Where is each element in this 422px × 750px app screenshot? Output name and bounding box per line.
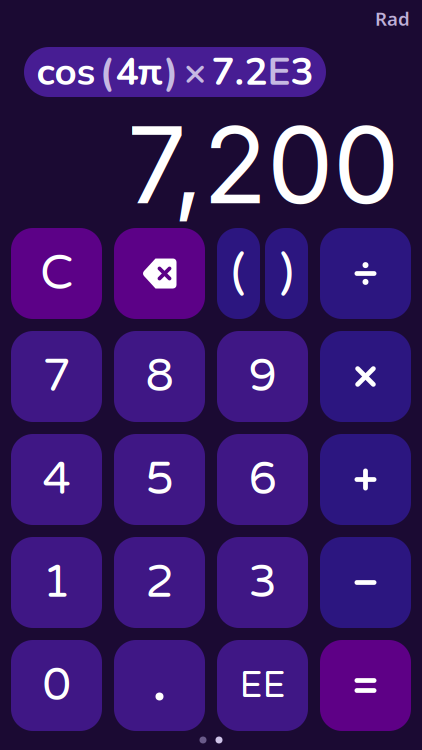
staticText: 3 [248,555,276,610]
staticText: 7,200 [127,101,399,229]
button[interactable]: Divide [320,228,411,319]
staticText: ( [99,46,113,98]
staticText: Rad [375,6,410,31]
staticText: 9 [248,349,276,404]
button[interactable]: C [11,228,102,319]
button[interactable]: 6 [217,434,308,525]
staticText: × [183,46,206,98]
staticText: C [40,245,73,302]
button[interactable]: EE [217,640,308,731]
staticText: 2 [145,555,173,610]
button[interactable]: 0 [11,640,102,731]
staticText: 4 [42,452,70,507]
staticText: 8 [145,349,173,404]
button[interactable]: Delete [114,228,205,319]
staticText: ) [164,46,178,98]
staticText: 1 [42,555,70,610]
button[interactable]: ) [265,228,308,319]
staticText: 4π [115,46,162,98]
button[interactable]: 7 [11,331,102,422]
staticText: 0 [42,658,70,713]
staticText: 3 [290,46,313,98]
staticText: 7 [42,349,70,404]
button[interactable]: Decimal point [114,640,205,731]
button[interactable]: Minus [320,537,411,628]
button[interactable]: 4 [11,434,102,525]
button[interactable]: 5 [114,434,205,525]
staticText: EE [239,664,285,707]
staticText: E [267,46,290,98]
button[interactable]: 3 [217,537,308,628]
button[interactable]: 9 [217,331,308,422]
button[interactable]: 8 [114,331,205,422]
staticText: ( [231,245,246,302]
button[interactable]: Rad [356,6,410,30]
staticText: ) [279,245,294,302]
staticText: 6 [248,452,276,507]
button[interactable]: Plus [320,434,411,525]
button[interactable]: Multiply [320,331,411,422]
button[interactable]: 2 [114,537,205,628]
staticText: 7.2 [211,46,267,98]
button[interactable]: Equals [320,640,411,731]
button[interactable]: ( [217,228,260,319]
staticText: cos [36,46,95,98]
button[interactable]: 1 [11,537,102,628]
staticText: 5 [145,452,173,507]
